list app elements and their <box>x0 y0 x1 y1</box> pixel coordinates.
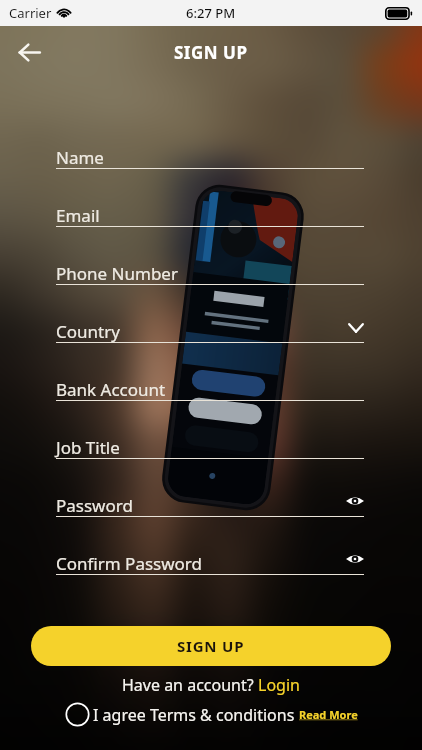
staticText: SIGN UP <box>177 636 245 656</box>
staticText: Email <box>56 204 100 227</box>
staticText: Confirm Password <box>56 552 202 575</box>
staticText: 6:27 PM <box>186 4 236 22</box>
button[interactable]: Name <box>56 133 364 191</box>
staticText: Password <box>56 494 133 517</box>
button[interactable]: I agree to terms and conditions <box>65 702 90 727</box>
staticText: Read More <box>299 707 358 722</box>
button[interactable]: SIGN UP <box>31 626 391 666</box>
staticText: SIGN UP <box>174 41 248 64</box>
button[interactable]: Password <box>56 481 364 539</box>
button[interactable]: Login <box>258 674 300 696</box>
button[interactable]: Phone Number <box>56 249 364 307</box>
staticText: Job Title <box>56 436 120 459</box>
staticText: Carrier <box>9 4 52 22</box>
staticText: Bank Account <box>56 378 166 401</box>
button[interactable]: Email <box>56 191 364 249</box>
staticText: Phone Number <box>56 262 178 285</box>
button[interactable]: Back <box>7 30 51 74</box>
staticText: Name <box>56 146 104 169</box>
staticText: I agree Terms & conditions <box>93 704 299 726</box>
button[interactable]: Read More <box>299 707 358 722</box>
staticText: Have an account? <box>122 674 258 696</box>
staticText: Country <box>56 320 120 343</box>
staticText: Login <box>258 674 300 696</box>
button[interactable]: Bank Account <box>56 365 364 423</box>
button[interactable]: Country <box>56 307 364 365</box>
button[interactable]: Job Title <box>56 423 364 481</box>
button[interactable]: Confirm Password <box>56 539 364 597</box>
